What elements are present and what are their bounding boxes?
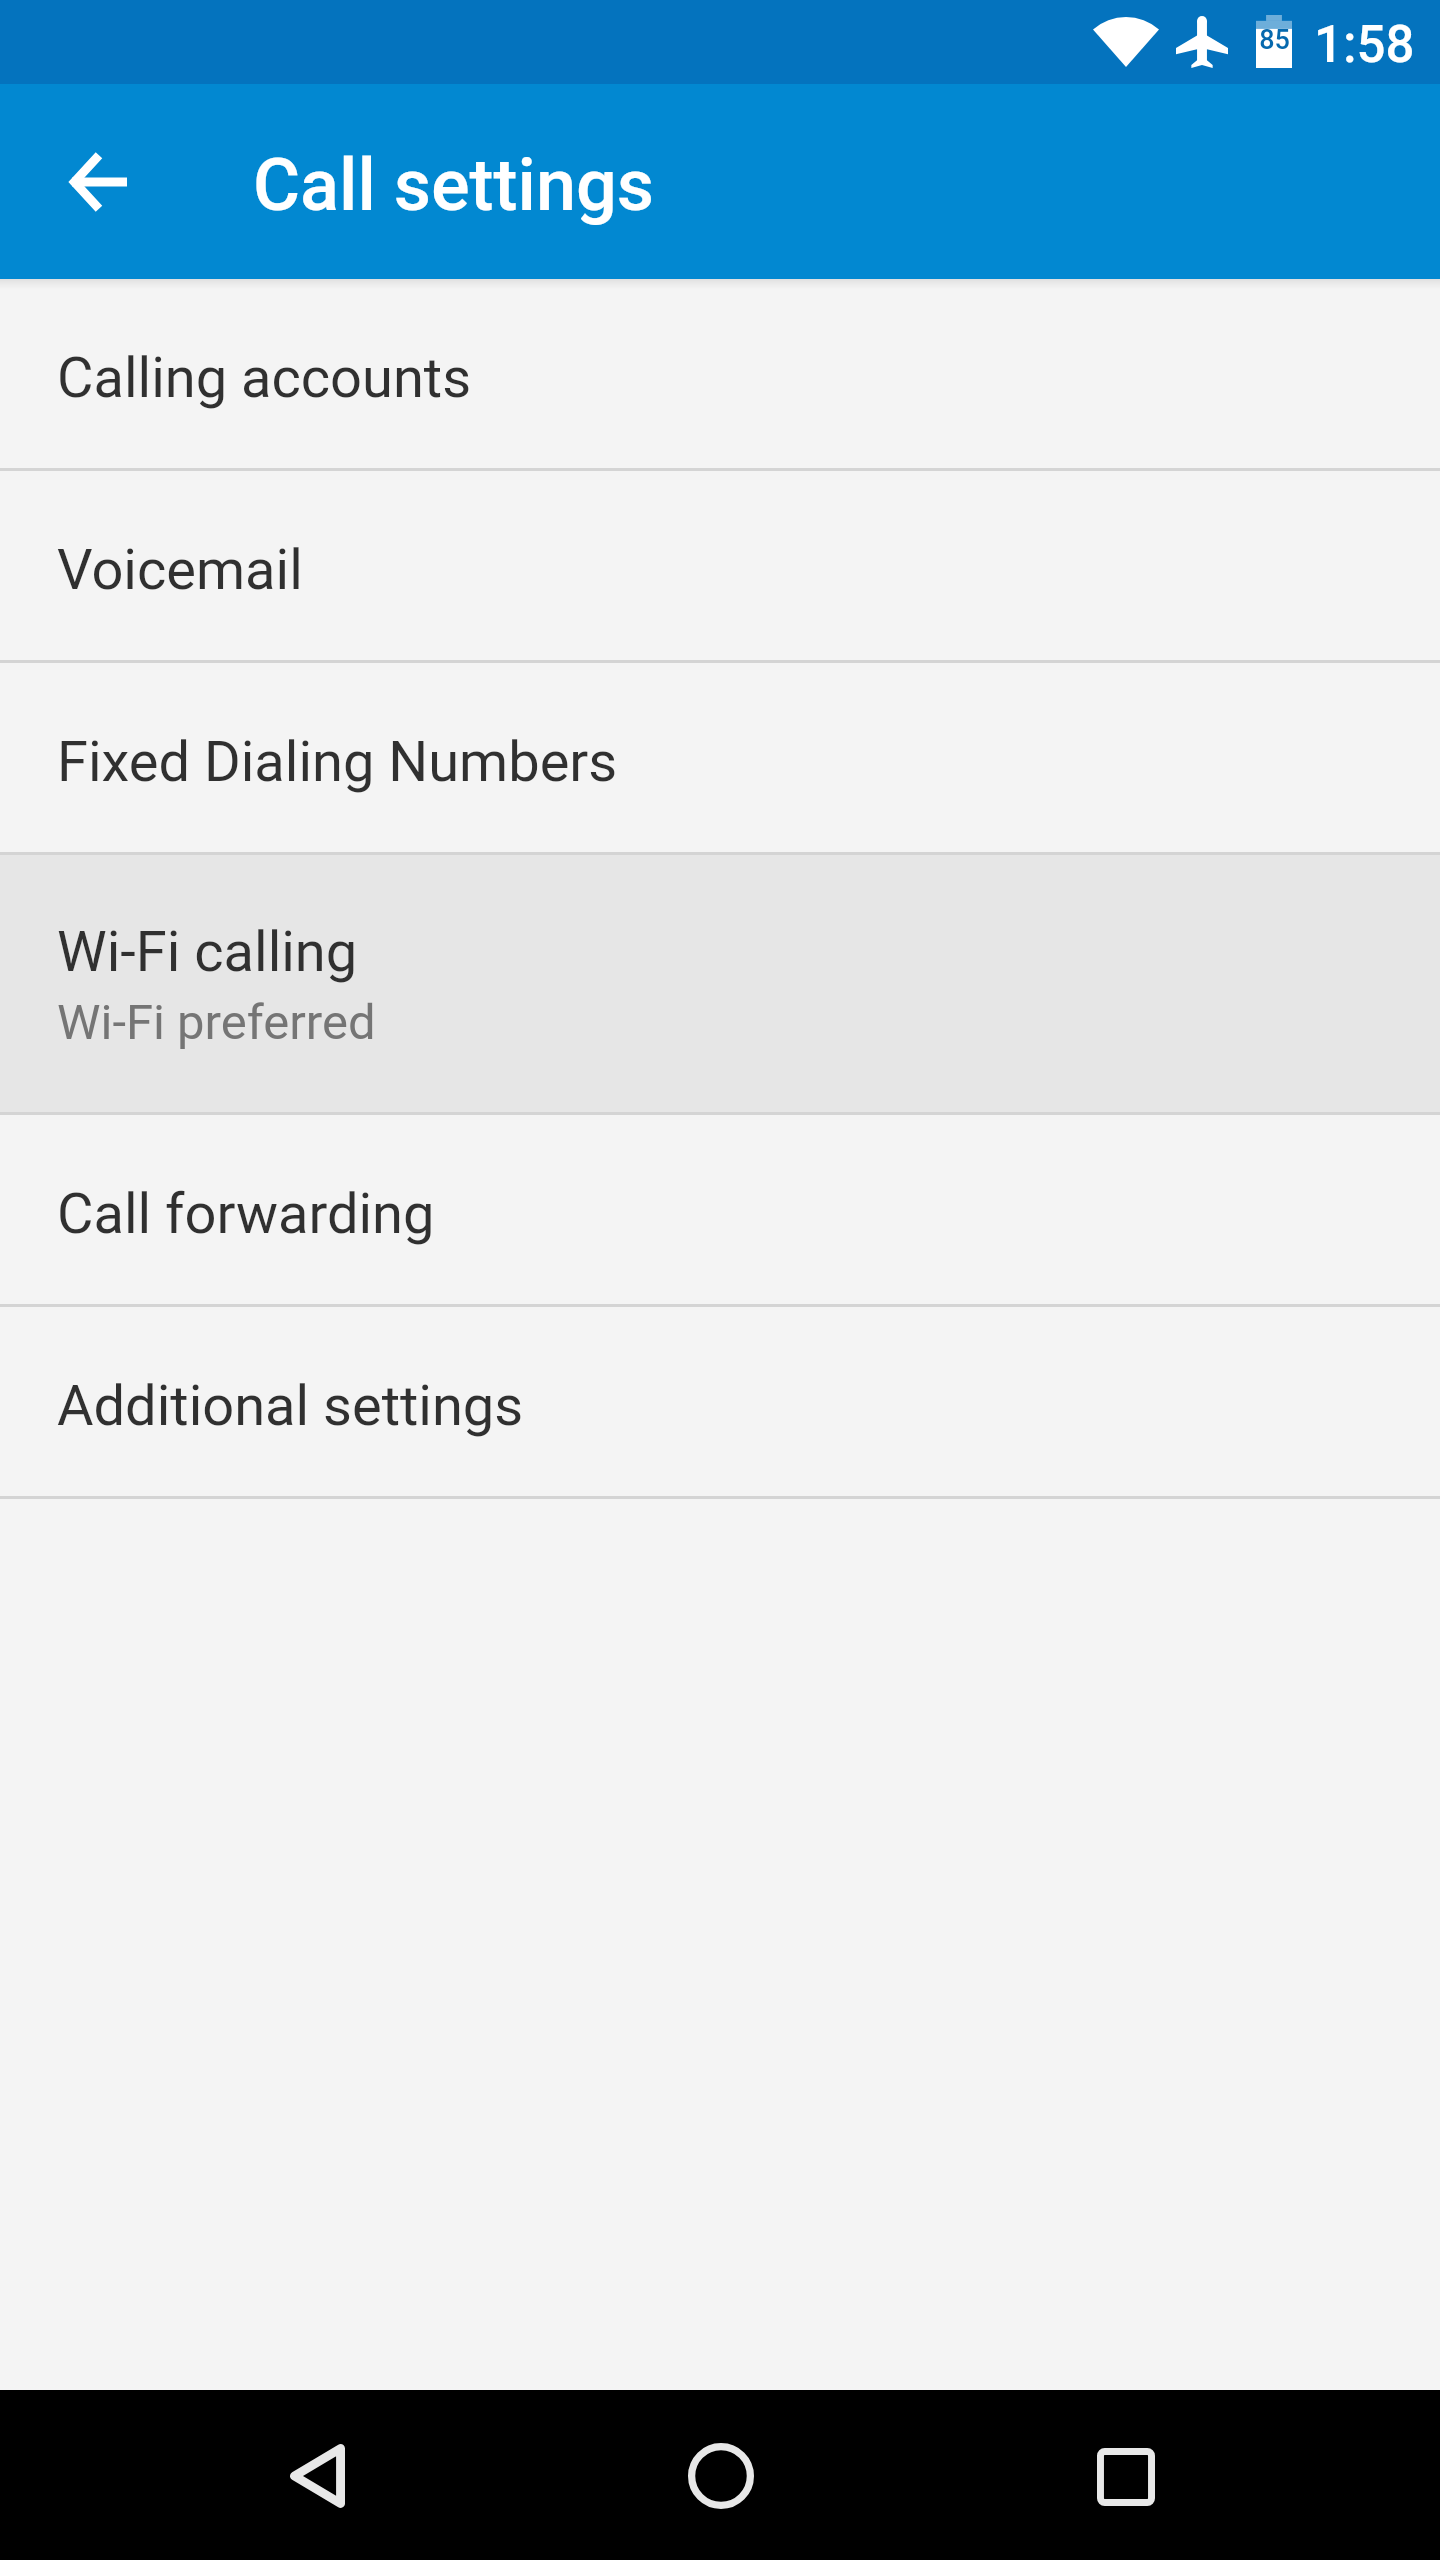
button[interactable]: Calling accounts (0, 279, 1440, 468)
staticText: Wi-Fi preferred (57, 994, 376, 1051)
staticText: Calling accounts (57, 345, 472, 411)
staticText: Call forwarding (57, 1181, 435, 1247)
button[interactable]: Fixed Dialing Numbers (0, 663, 1440, 852)
button[interactable]: Voicemail (0, 471, 1440, 660)
staticText: Fixed Dialing Numbers (57, 729, 618, 795)
staticText: 85 (1259, 24, 1290, 56)
staticText: Wi-Fi calling (57, 919, 358, 985)
staticText: Voicemail (57, 537, 303, 603)
button[interactable]: Back (226, 2391, 406, 2560)
button[interactable]: Wi-Fi calling (0, 855, 1440, 1112)
staticText: Additional settings (57, 1373, 524, 1439)
button[interactable]: Additional settings (0, 1307, 1440, 1496)
button[interactable]: Recent apps (1036, 2392, 1216, 2560)
button[interactable]: Home (631, 2391, 811, 2560)
button[interactable]: Navigate up (39, 124, 155, 240)
button[interactable]: Call forwarding (0, 1115, 1440, 1304)
staticText: 1:58 (1314, 15, 1415, 75)
staticText: Call settings (253, 143, 655, 227)
